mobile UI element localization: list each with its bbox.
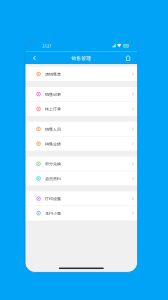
staticText: 本行小票 [45,210,61,216]
staticText: 会员资料 [45,176,61,181]
button[interactable]: Back [29,53,40,64]
staticText: 销售业绩 [45,141,61,147]
button[interactable]: 销售人员 [25,122,138,136]
button[interactable]: Home [123,53,134,64]
staticText: 销售人员 [45,126,61,132]
staticText: 销售记录 [45,91,61,97]
staticText: 请销售单 [45,71,61,77]
button[interactable]: 本行小票 [25,206,138,220]
button[interactable]: 打印设置 [25,191,138,206]
button[interactable]: 请销售单 [25,67,138,81]
staticText: 积分兑换 [45,161,61,167]
staticText: 打印设置 [45,196,61,201]
button[interactable]: 积分兑换 [25,157,138,171]
button[interactable]: 销售记录 [25,87,138,101]
button[interactable]: 销售业绩 [25,136,138,151]
button[interactable]: 会员资料 [25,171,138,186]
staticText: 销售管理 [71,55,91,62]
button[interactable]: 线上订单 [25,102,138,116]
staticText: 线上订单 [45,106,61,112]
staticText: 17:27 [42,43,51,49]
